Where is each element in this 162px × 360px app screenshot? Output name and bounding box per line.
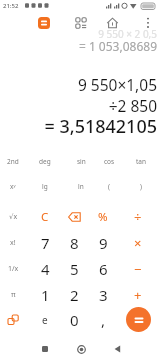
staticText: tan [136, 157, 147, 166]
button[interactable]: , [88, 309, 118, 331]
button[interactable] [59, 206, 89, 228]
button[interactable]: 6 [88, 258, 118, 280]
button[interactable]: 1/x [0, 258, 28, 280]
button[interactable]: xʸ [0, 175, 28, 197]
staticText: xʸ [10, 182, 16, 191]
button[interactable]: 8 [59, 232, 89, 254]
button[interactable]: + [123, 284, 153, 306]
button[interactable] [106, 17, 119, 29]
staticText: cos [104, 157, 115, 166]
staticText: 9 550 × 2 0,5 [98, 27, 157, 41]
staticText: π [11, 290, 16, 300]
staticText: x! [10, 238, 16, 248]
staticText: C [41, 209, 49, 225]
staticText: lg [42, 182, 48, 191]
staticText: 7 [41, 233, 50, 253]
button[interactable]: C [30, 206, 60, 228]
button[interactable]: ÷ [123, 206, 153, 228]
staticText: e [42, 313, 48, 327]
staticText: % [98, 209, 108, 225]
button[interactable]: 1 [30, 284, 60, 306]
button[interactable] [72, 340, 90, 358]
button[interactable]: % [88, 206, 118, 228]
staticText: √x [9, 212, 18, 222]
button[interactable]: 9 [88, 232, 118, 254]
staticText: 2nd [7, 157, 19, 166]
staticText: + [134, 286, 142, 304]
staticText: 9 550×1,05 [77, 74, 157, 95]
button[interactable]: x! [0, 232, 28, 254]
button[interactable]: 5 [59, 258, 89, 280]
staticText: ln [78, 182, 84, 191]
button[interactable] [108, 340, 126, 358]
button[interactable]: cos [94, 150, 124, 172]
staticText: 3 [99, 285, 108, 305]
button[interactable]: 2 [59, 284, 89, 306]
button[interactable]: × [123, 232, 153, 254]
button[interactable]: √x [0, 206, 28, 228]
staticText: = 3,51842105 [44, 114, 157, 139]
button[interactable]: π [0, 284, 28, 306]
button[interactable] [75, 17, 87, 29]
button[interactable]: tan [126, 150, 156, 172]
staticText: sin [77, 157, 86, 166]
button[interactable]: lg [30, 175, 60, 197]
button[interactable]: e [30, 309, 60, 331]
staticText: 8 [70, 233, 79, 253]
staticText: − [134, 260, 142, 278]
button[interactable]: − [123, 258, 153, 280]
staticText: ) [140, 182, 142, 191]
button[interactable] [0, 309, 26, 331]
button[interactable]: 2nd [0, 150, 28, 172]
staticText: 0 [70, 310, 79, 330]
button[interactable]: 4 [30, 258, 60, 280]
button[interactable]: ( [94, 175, 124, 197]
staticText: ÷2 850 [108, 95, 157, 116]
staticText: × [134, 234, 142, 252]
staticText: ( [108, 182, 110, 191]
staticText: 4 [41, 259, 50, 279]
button[interactable]: deg [30, 150, 60, 172]
staticText: 1 [41, 285, 50, 305]
staticText: ÷ [134, 208, 142, 226]
button[interactable]: 3 [88, 284, 118, 306]
staticText: deg [39, 157, 51, 166]
staticText: 21:52 [3, 2, 19, 10]
staticText: 9 [99, 233, 108, 253]
staticText: 2 [70, 285, 79, 305]
button[interactable] [38, 17, 50, 29]
button[interactable]: ln [66, 175, 96, 197]
staticText: , [101, 310, 106, 330]
staticText: 5 [70, 259, 79, 279]
button[interactable] [36, 340, 54, 358]
button[interactable] [126, 307, 151, 332]
staticText: = 1 053,08689 [78, 38, 157, 54]
button[interactable]: 7 [30, 232, 60, 254]
button[interactable]: ) [126, 175, 156, 197]
button[interactable] [142, 16, 154, 30]
button[interactable]: sin [66, 150, 96, 172]
button[interactable]: 0 [59, 309, 89, 331]
staticText: 1/x [8, 264, 19, 274]
staticText: 6 [99, 259, 108, 279]
